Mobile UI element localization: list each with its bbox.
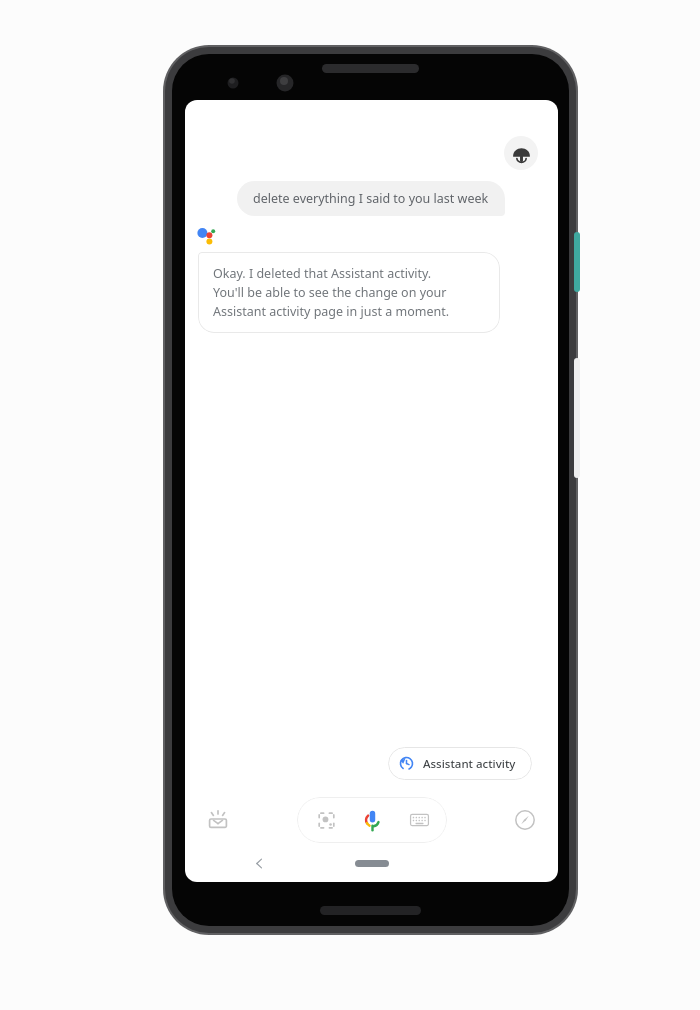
staticText: Assistant activity <box>423 756 516 772</box>
button[interactable]: delete everything I said to you last wee… <box>237 181 505 216</box>
button[interactable]: Snapshot <box>197 799 239 841</box>
button[interactable]: Explore <box>504 799 546 841</box>
button[interactable]: Voice search <box>354 802 390 838</box>
button[interactable]: Account <box>504 136 538 170</box>
button[interactable]: Back <box>243 847 275 879</box>
staticText: Okay. I deleted that Assistant activity.… <box>213 265 450 320</box>
staticText: delete everything I said to you last wee… <box>253 190 489 207</box>
button[interactable]: Home <box>355 860 389 867</box>
button[interactable]: Keyboard <box>402 803 436 837</box>
button[interactable]: Okay. I deleted that Assistant activity.… <box>198 252 500 333</box>
button[interactable]: Assistant activity <box>388 747 532 780</box>
button[interactable]: Google Lens <box>309 803 343 837</box>
